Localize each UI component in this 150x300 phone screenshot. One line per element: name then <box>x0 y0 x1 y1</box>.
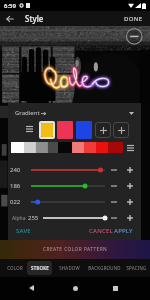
staticText: CREATE COLOR PATTERN <box>43 246 108 253</box>
button[interactable]: Increase 240 <box>124 164 136 176</box>
button[interactable]: Expand gradient list <box>126 108 136 118</box>
staticText: DONE <box>124 15 143 23</box>
button[interactable]: Home <box>67 280 83 296</box>
staticText: 022 <box>10 198 21 206</box>
staticText: Style <box>25 13 44 24</box>
button[interactable]: Gradient preview <box>11 142 123 153</box>
button[interactable]: Color swatch <box>76 121 92 139</box>
button[interactable]: Decrease Alpha 255 <box>108 212 120 224</box>
button[interactable]: Increase 186 <box>124 180 136 192</box>
button[interactable]: Back <box>23 280 39 296</box>
staticText: 186 <box>10 182 21 190</box>
button[interactable]: Decrease 022 <box>108 196 120 208</box>
staticText: STROKE <box>31 265 49 271</box>
button[interactable]: SAVE <box>15 226 32 236</box>
staticText: Gradient <box>15 109 40 117</box>
button[interactable]: Gradient <box>13 107 48 119</box>
button[interactable]: DONE <box>122 12 145 26</box>
staticText: APPLY <box>114 227 133 235</box>
staticText: 6:59 <box>4 2 16 10</box>
button[interactable]: Add color <box>95 122 111 138</box>
staticText: 255 <box>28 214 39 222</box>
button[interactable]: Gradient options <box>124 141 136 153</box>
button[interactable]: Recents <box>107 280 123 296</box>
staticText: COLOR <box>7 265 23 271</box>
button[interactable]: Increase Alpha 255 <box>124 212 136 224</box>
button[interactable]: BACKGROUND <box>85 261 123 275</box>
staticText: 240 <box>10 166 21 174</box>
button[interactable]: Decrease 240 <box>108 164 120 176</box>
button[interactable]: CANCEL <box>88 226 114 236</box>
button[interactable]: Add color <box>113 122 129 138</box>
button[interactable]: Back <box>3 12 17 26</box>
staticText: SPACING <box>126 265 147 271</box>
button[interactable]: Color swatch <box>57 121 73 139</box>
staticText: SHADOW <box>59 265 80 271</box>
staticText: SAVE <box>16 227 31 235</box>
button[interactable]: 240 slider <box>31 164 105 176</box>
button[interactable]: Color swatch <box>41 123 53 137</box>
button[interactable]: APPLY <box>113 226 134 236</box>
button[interactable]: 186 slider <box>31 180 105 192</box>
staticText: Alpha <box>12 215 26 222</box>
button[interactable]: CREATE COLOR PATTERN <box>0 240 150 259</box>
button[interactable]: Decrease 186 <box>108 180 120 192</box>
button[interactable]: 022 slider <box>31 196 105 208</box>
button[interactable]: Alpha 255 slider <box>43 212 105 224</box>
button[interactable]: SPACING <box>123 261 150 275</box>
button[interactable]: STROKE <box>27 261 52 275</box>
staticText: BACKGROUND <box>88 265 121 271</box>
button[interactable]: Reorder colors <box>23 122 35 134</box>
button[interactable]: COLOR <box>1 261 28 275</box>
button[interactable]: SHADOW <box>56 261 83 275</box>
button[interactable]: Increase 022 <box>124 196 136 208</box>
staticText: CANCEL <box>89 227 113 235</box>
